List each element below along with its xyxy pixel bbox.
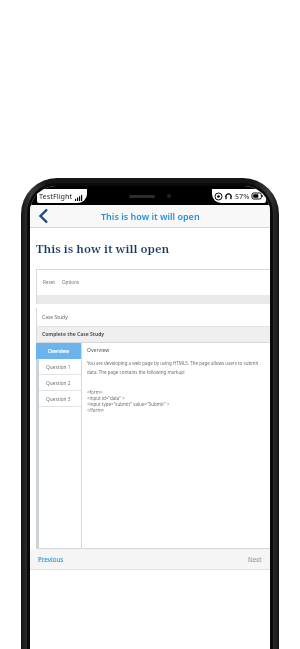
staticText: </form>: [87, 407, 105, 413]
button[interactable]: Case Study: [36, 308, 270, 326]
button[interactable]: Previous: [36, 553, 66, 565]
staticText: This is how it will open: [36, 241, 170, 257]
button[interactable]: Question 1: [36, 359, 81, 375]
button[interactable]: Next: [246, 553, 264, 565]
button[interactable]: Back: [30, 205, 56, 227]
button[interactable]: Options: [61, 278, 81, 286]
staticText: Overview: [48, 348, 69, 355]
staticText: Overview: [87, 347, 110, 354]
staticText: Next: [248, 555, 262, 563]
button[interactable]: Question 2: [36, 375, 81, 391]
staticText: Question 1: [46, 364, 71, 371]
staticText: <input type="submit" value="Submit" >: [87, 401, 170, 407]
staticText: <input id="data" >: [87, 395, 125, 401]
staticText: Case Study: [42, 314, 68, 321]
staticText: <form>: [87, 389, 103, 395]
staticText: 57%: [235, 191, 250, 201]
button[interactable]: Overview: [36, 343, 81, 359]
button[interactable]: Question 3: [36, 391, 81, 407]
staticText: Question 3: [46, 396, 71, 403]
staticText: You are developing a web page by using H…: [87, 360, 267, 375]
staticText: Reset: [43, 279, 55, 285]
staticText: This is how it will open: [101, 210, 200, 222]
staticText: Previous: [38, 555, 64, 563]
staticText: Complete the Case Study: [42, 331, 105, 338]
staticText: Question 2: [46, 380, 71, 387]
button[interactable]: Complete the Case Study: [36, 327, 270, 342]
button[interactable]: Reset: [42, 278, 56, 286]
staticText: Options: [62, 279, 80, 285]
staticText: TestFlight: [39, 191, 73, 201]
